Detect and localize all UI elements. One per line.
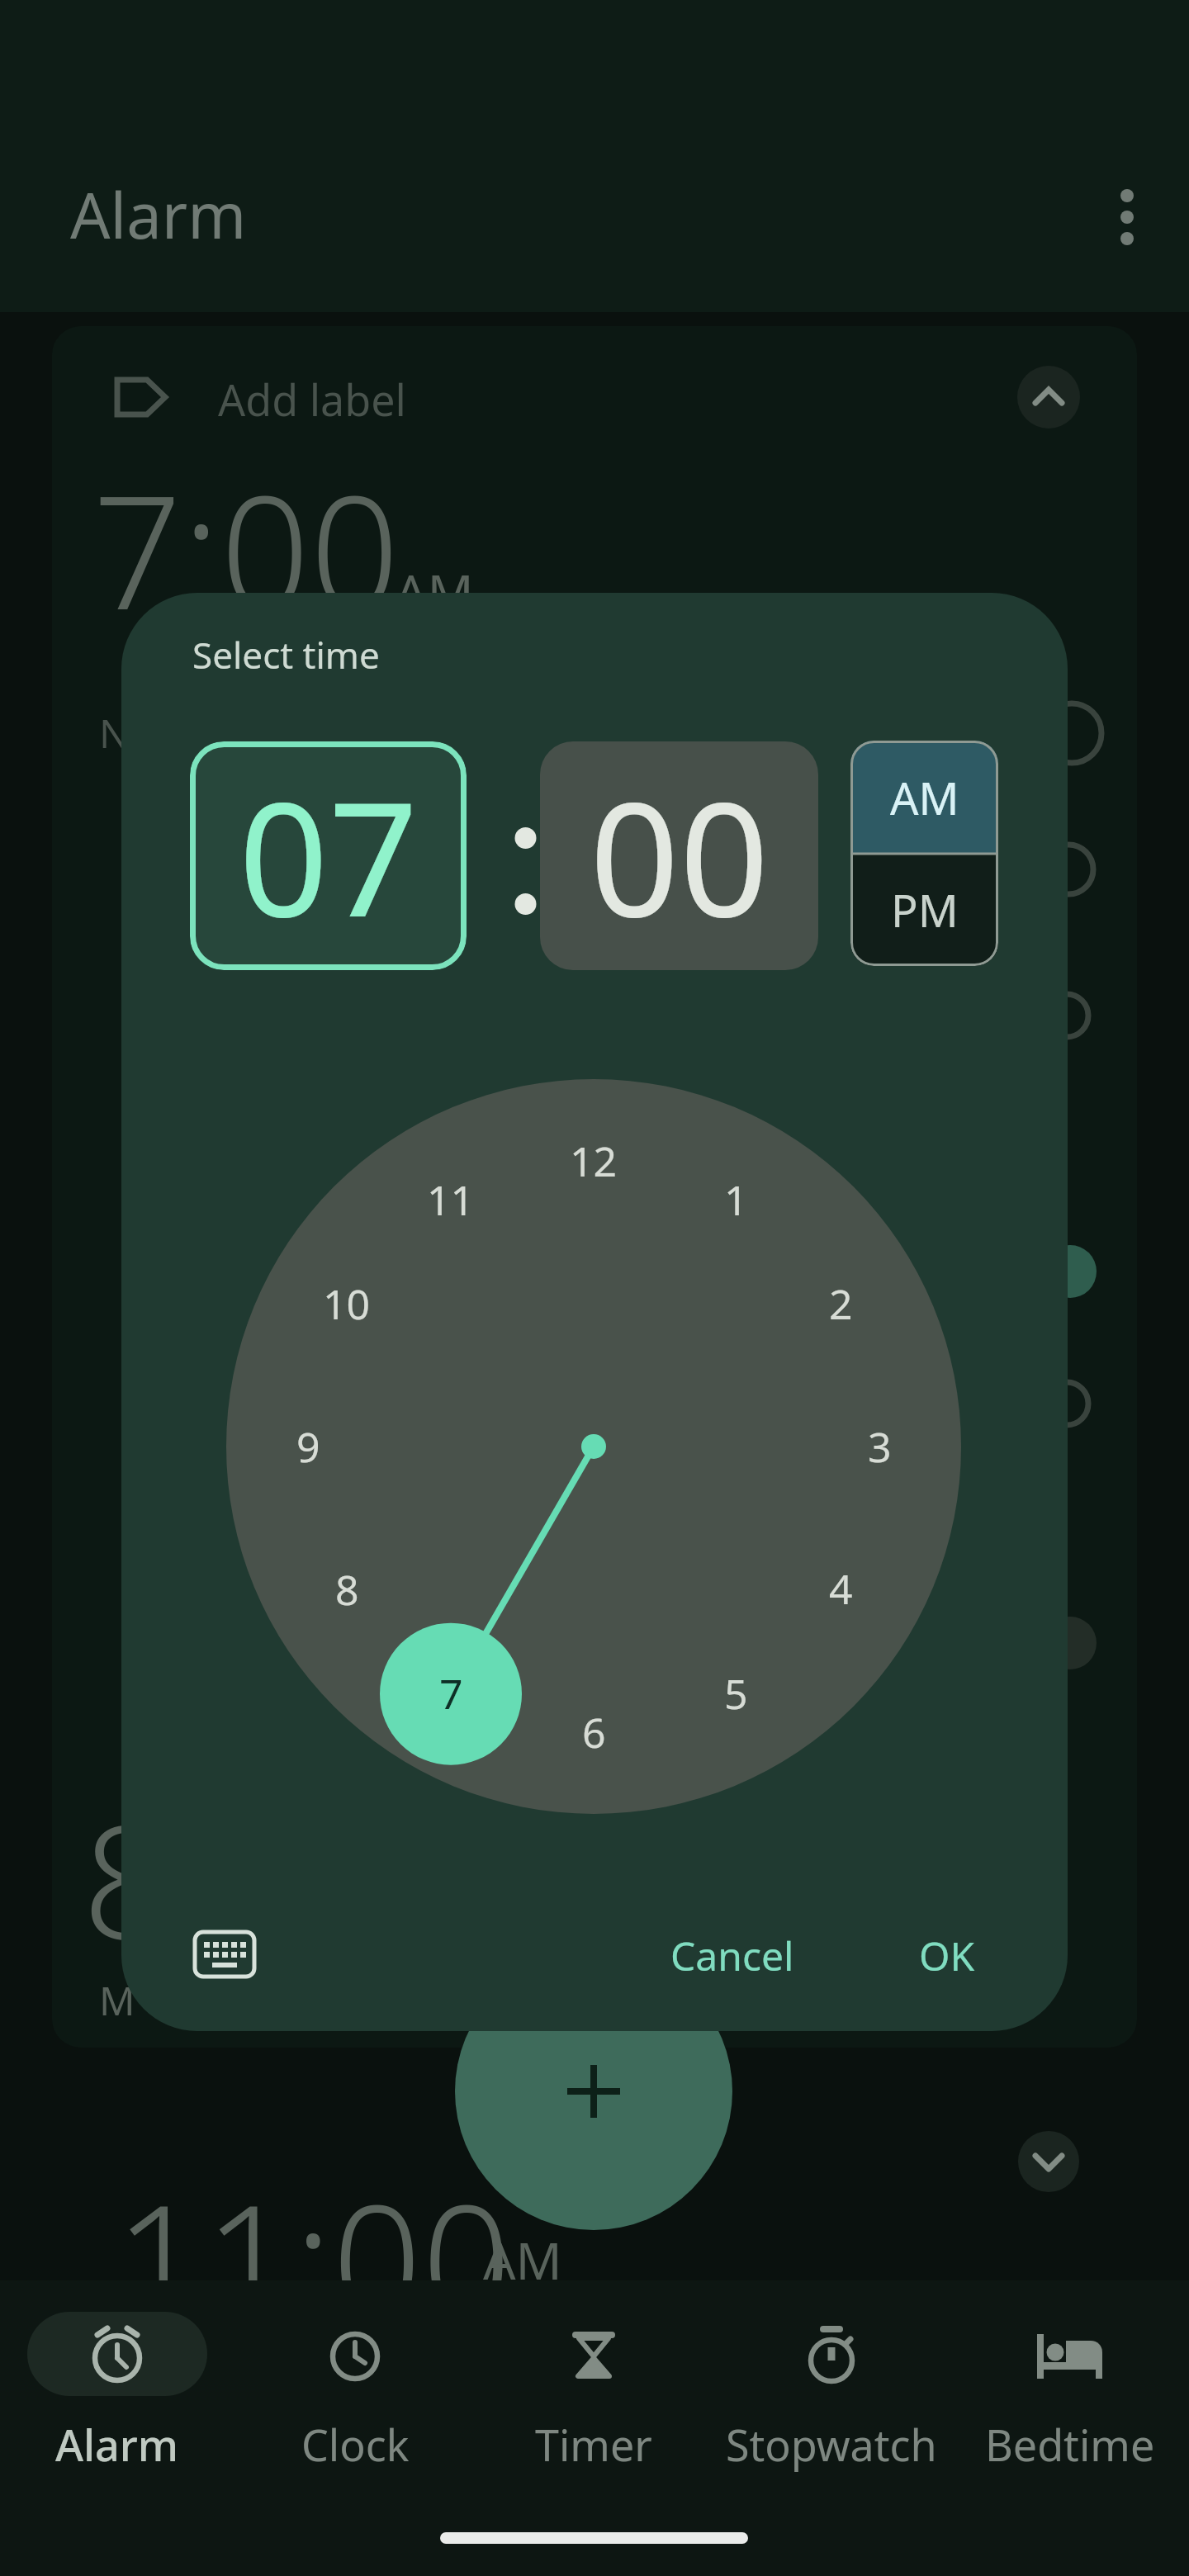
staticText: Add label bbox=[218, 370, 407, 424]
staticText: Stopwatch bbox=[726, 2415, 937, 2473]
staticText: 10 bbox=[323, 1276, 371, 1332]
button[interactable]: PM bbox=[850, 854, 998, 966]
button[interactable] bbox=[504, 2308, 684, 2481]
button[interactable] bbox=[980, 2308, 1160, 2481]
staticText: 7:00 bbox=[92, 442, 400, 623]
staticText: M bbox=[99, 1973, 132, 2023]
staticText: Timer bbox=[535, 2415, 652, 2473]
button[interactable]: 00 bbox=[540, 741, 818, 970]
button[interactable] bbox=[455, 1953, 732, 2230]
staticText: 5 bbox=[724, 1665, 748, 1721]
staticText: N bbox=[99, 706, 130, 755]
staticText: Select time bbox=[192, 630, 380, 680]
button[interactable] bbox=[265, 2308, 445, 2481]
staticText: 12 bbox=[570, 1133, 618, 1189]
staticText: 11 bbox=[427, 1172, 475, 1228]
staticText: 11:00 bbox=[115, 2151, 512, 2332]
button[interactable] bbox=[226, 1079, 961, 1814]
staticText: 2 bbox=[829, 1276, 853, 1332]
staticText: OK bbox=[919, 1929, 975, 1982]
staticText: 6 bbox=[582, 1704, 606, 1760]
staticText: 9 bbox=[296, 1418, 320, 1475]
button[interactable]: OK bbox=[881, 1914, 1013, 1996]
button[interactable] bbox=[1090, 178, 1164, 260]
staticText: AM bbox=[483, 2225, 562, 2294]
button[interactable]: Cancel bbox=[642, 1914, 823, 1996]
staticText: 7 bbox=[439, 1665, 463, 1721]
button[interactable] bbox=[179, 1911, 270, 1998]
staticText: PM bbox=[891, 879, 959, 940]
button[interactable] bbox=[741, 2308, 921, 2481]
staticText: 8 bbox=[83, 1771, 173, 1953]
staticText: Bedtime bbox=[985, 2415, 1155, 2473]
staticText: Cancel bbox=[670, 1929, 794, 1982]
staticText: 00 bbox=[590, 749, 770, 963]
button[interactable] bbox=[1017, 366, 1080, 429]
button[interactable]: Add label bbox=[218, 370, 482, 424]
staticText: 07 bbox=[239, 749, 419, 963]
staticText: 3 bbox=[868, 1418, 892, 1475]
staticText: 4 bbox=[829, 1560, 853, 1617]
staticText: Alarm bbox=[55, 2415, 179, 2473]
button[interactable]: AM bbox=[850, 741, 998, 854]
staticText: AM bbox=[890, 767, 959, 828]
staticText: Clock bbox=[301, 2415, 410, 2473]
staticText: 8 bbox=[335, 1561, 359, 1617]
staticText: AM bbox=[395, 557, 474, 627]
staticText: Alarm bbox=[70, 172, 247, 258]
button[interactable]: 07 bbox=[190, 741, 467, 970]
button[interactable] bbox=[27, 2308, 207, 2481]
staticText: 1 bbox=[724, 1172, 748, 1228]
button[interactable] bbox=[1018, 2131, 1079, 2192]
